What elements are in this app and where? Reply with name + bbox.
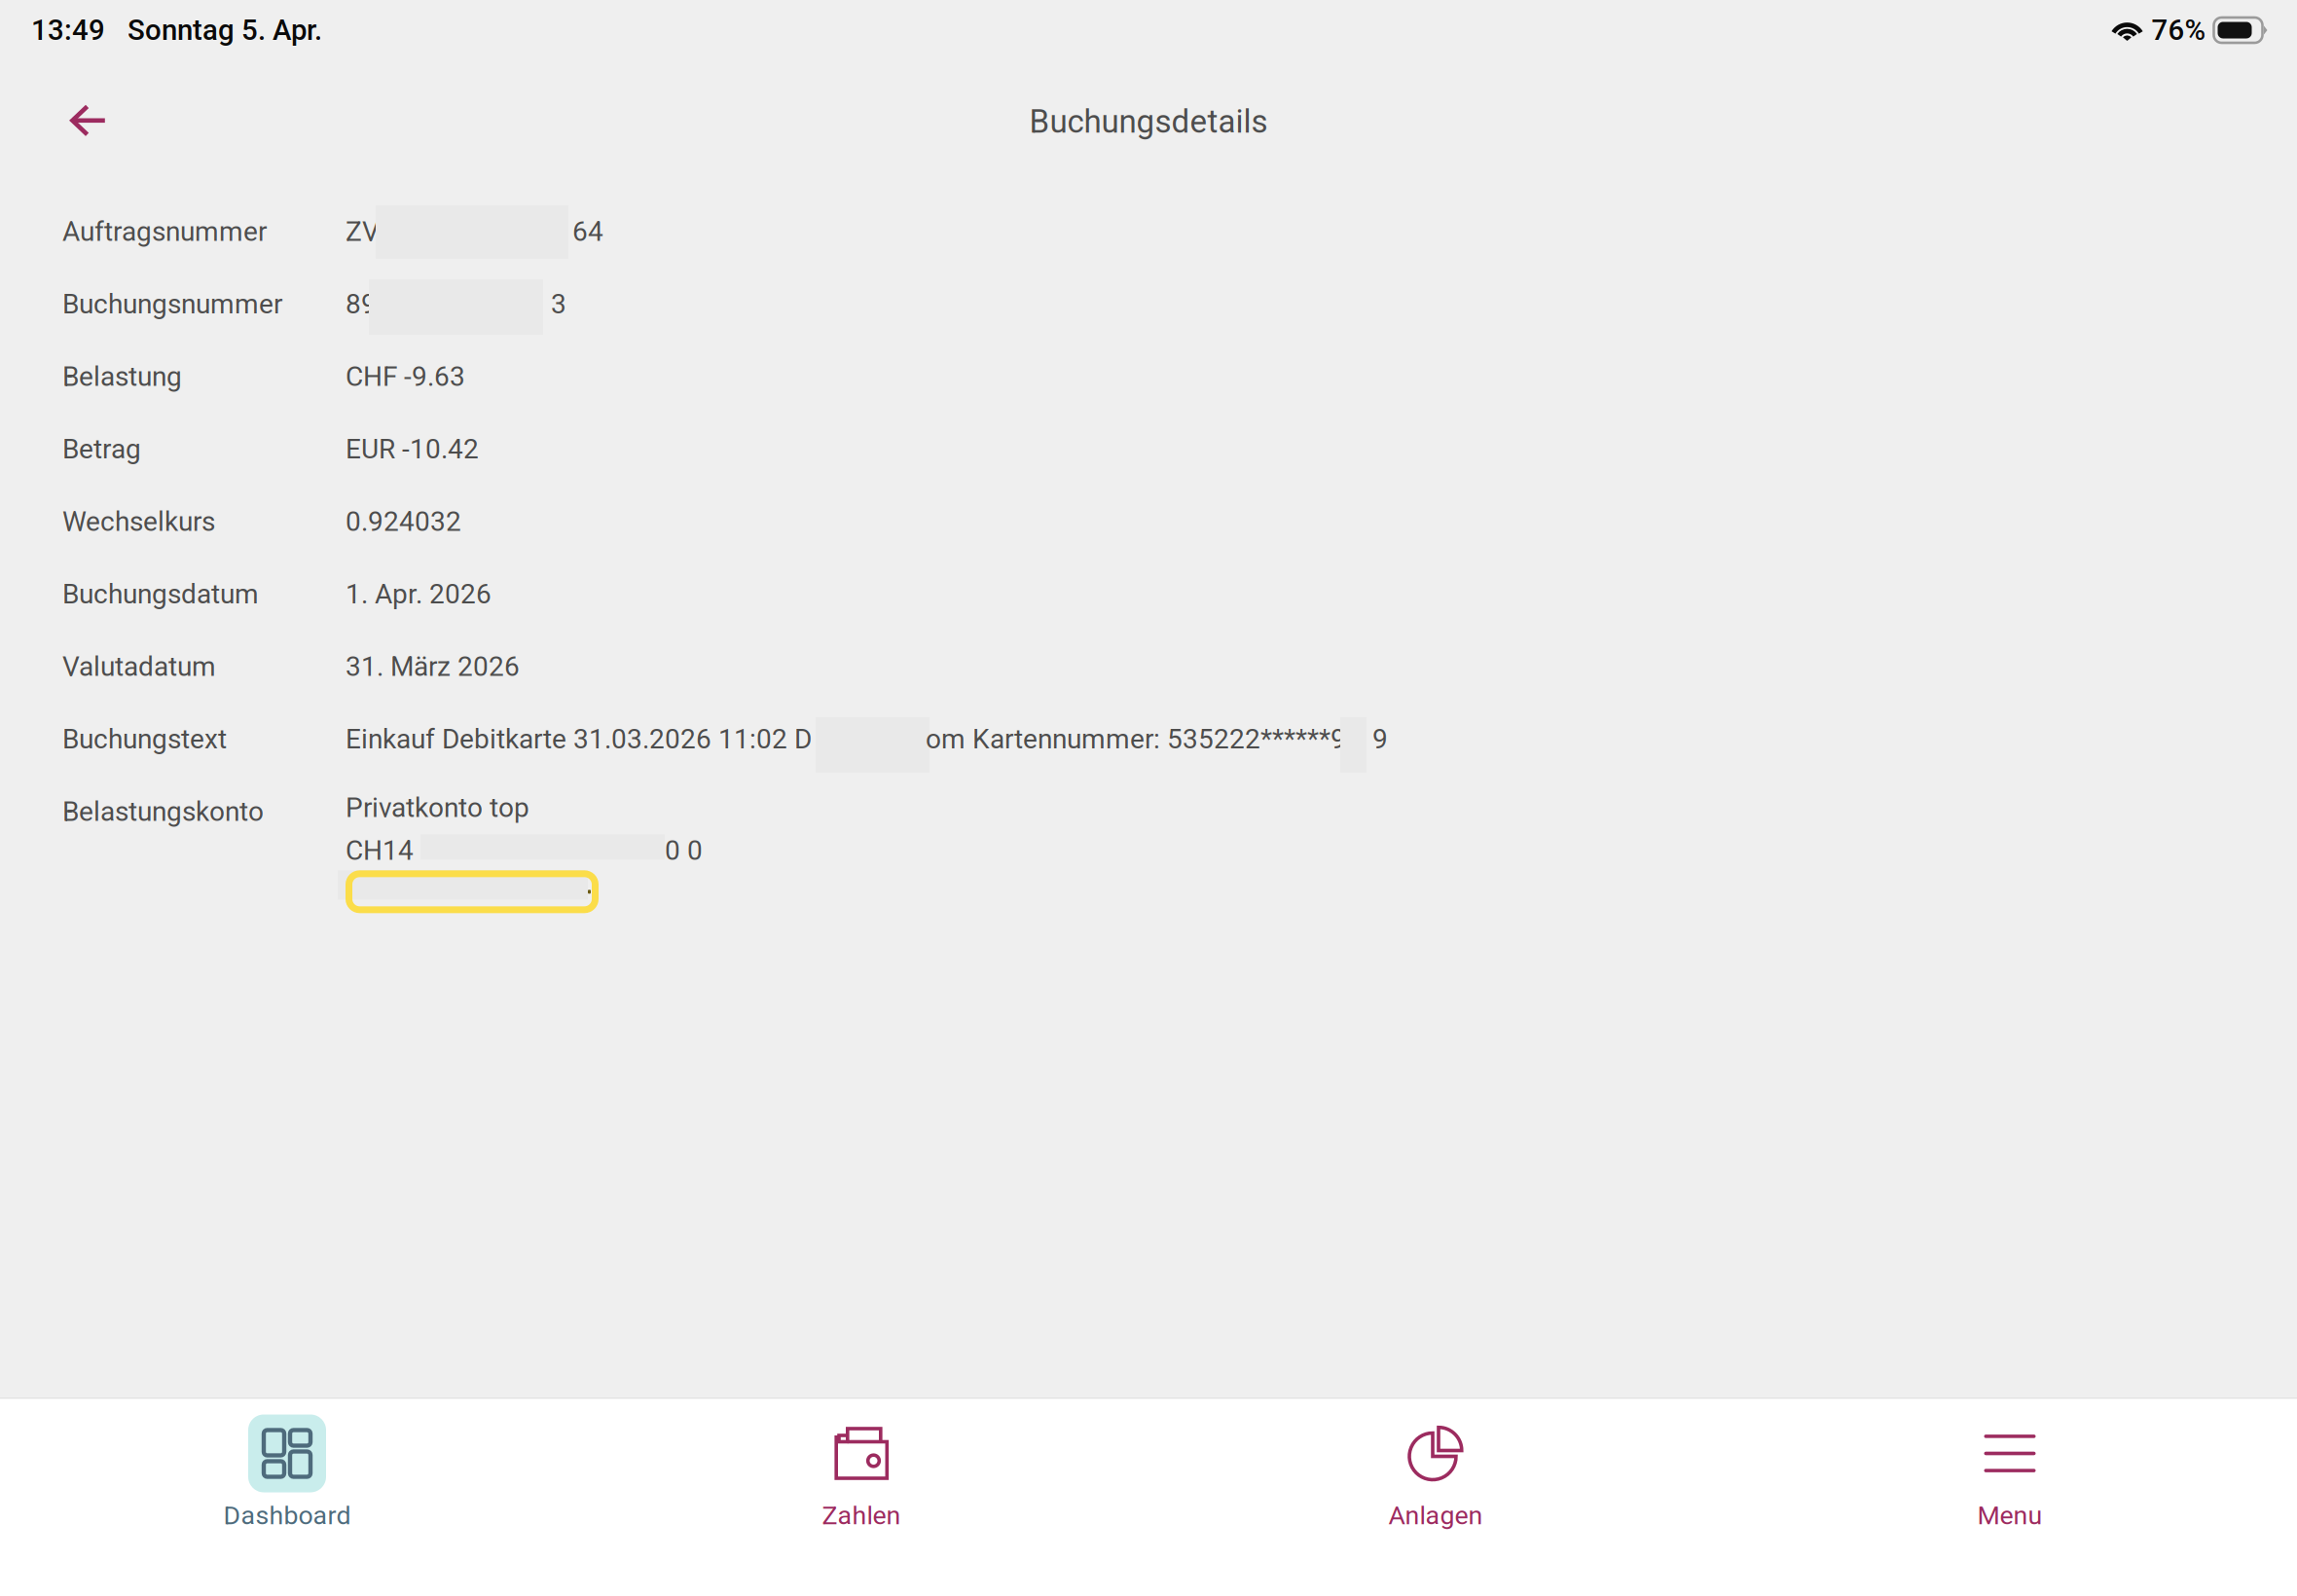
- staticText: Buchungstext: [62, 723, 227, 755]
- staticText: 1. Apr. 2026: [346, 578, 492, 610]
- staticText: Betrag: [62, 433, 141, 465]
- staticText: Buchungsdatum: [62, 578, 259, 610]
- staticText: Valutadatum: [62, 651, 216, 682]
- button[interactable]: Anlagen: [1148, 1399, 1723, 1596]
- staticText: ZV: [346, 216, 380, 248]
- staticText: Dashboard: [223, 1500, 351, 1531]
- button[interactable]: Dashboard: [0, 1399, 574, 1596]
- staticText: 0.924032: [346, 506, 461, 537]
- staticText: EUR -10.42: [346, 433, 479, 465]
- staticText: Menu: [1977, 1500, 2042, 1531]
- staticText: Anlagen: [1388, 1500, 1483, 1531]
- staticText: 64: [572, 216, 603, 248]
- staticText: 0 0: [658, 834, 703, 866]
- staticText: 76%: [2151, 13, 2206, 47]
- staticText: Belastung: [62, 361, 182, 392]
- staticText: Buchungsdetails: [1029, 103, 1268, 141]
- button[interactable]: Menu: [1723, 1399, 2297, 1596]
- staticText: 13:49: [31, 13, 105, 47]
- staticText: Zahlen: [822, 1500, 901, 1531]
- staticText: 3: [551, 288, 566, 320]
- button[interactable]: Zurück: [47, 82, 130, 160]
- staticText: CH14: [346, 834, 414, 866]
- staticText: om Kartennummer: 535222******9: [926, 723, 1346, 755]
- button[interactable]: Zahlen: [574, 1399, 1148, 1596]
- staticText: 89: [346, 288, 377, 320]
- staticText: Buchungsnummer: [62, 288, 282, 320]
- staticText: Auftragsnummer: [62, 216, 267, 247]
- staticText: 31. März 2026: [346, 651, 520, 682]
- staticText: Einkauf Debitkarte 31.03.2026 11:02 D: [346, 723, 812, 755]
- staticText: 9: [1372, 723, 1388, 755]
- staticText: CHF -9.63: [346, 361, 465, 392]
- staticText: Belastungskonto: [62, 796, 264, 827]
- staticText: Wechselkurs: [62, 506, 215, 537]
- staticText: Privatkonto top: [346, 792, 529, 824]
- staticText: Sonntag 5. Apr.: [128, 13, 322, 47]
